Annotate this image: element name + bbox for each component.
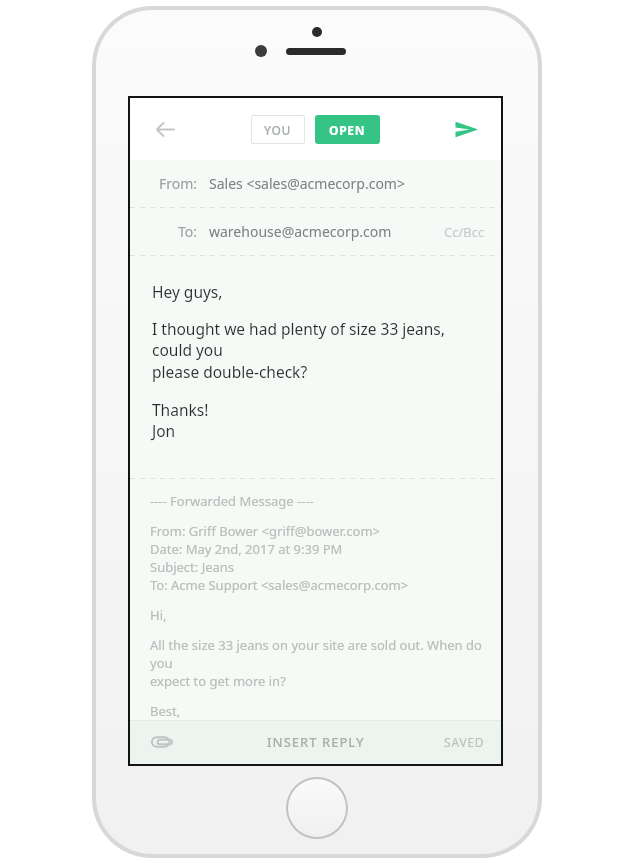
- staticText: YOU: [264, 122, 292, 138]
- button[interactable]: YOU: [251, 115, 305, 144]
- staticText: SAVED: [444, 734, 485, 750]
- staticText: ---- Forwarded Message ----: [150, 492, 314, 510]
- staticText: Hi,: [150, 606, 167, 624]
- staticText: warehouse@acmecorp.com: [209, 222, 392, 241]
- button[interactable]: Back: [142, 106, 188, 152]
- button[interactable]: OPEN: [315, 115, 380, 144]
- staticText: OPEN: [329, 122, 366, 138]
- button[interactable]: INSERT REPLY: [267, 733, 365, 751]
- staticText: INSERT REPLY: [267, 733, 365, 751]
- staticText: Cc/Bcc: [444, 223, 485, 241]
- staticText: Thanks! Jon: [152, 399, 209, 442]
- staticText: Best,: [150, 702, 181, 720]
- staticText: Sales <sales@acmecorp.com>: [209, 174, 405, 193]
- staticText: From:: [159, 174, 198, 193]
- staticText: To:: [178, 222, 198, 241]
- staticText: Hey guys,: [152, 281, 223, 302]
- staticText: All the size 33 jeans on your site are s…: [150, 636, 485, 690]
- button[interactable]: Send: [443, 106, 489, 152]
- staticText: From: Griff Bower <griff@bower.com> Date…: [150, 522, 409, 594]
- button[interactable]: SAVED: [444, 734, 485, 750]
- button[interactable]: ---- Forwarded Message ----: [150, 492, 485, 720]
- button[interactable]: Hey guys,: [152, 281, 485, 478]
- button[interactable]: Attach file: [142, 722, 182, 762]
- button[interactable]: To:: [130, 208, 501, 255]
- staticText: I thought we had plenty of size 33 jeans…: [152, 318, 485, 383]
- button[interactable]: From:: [130, 160, 501, 207]
